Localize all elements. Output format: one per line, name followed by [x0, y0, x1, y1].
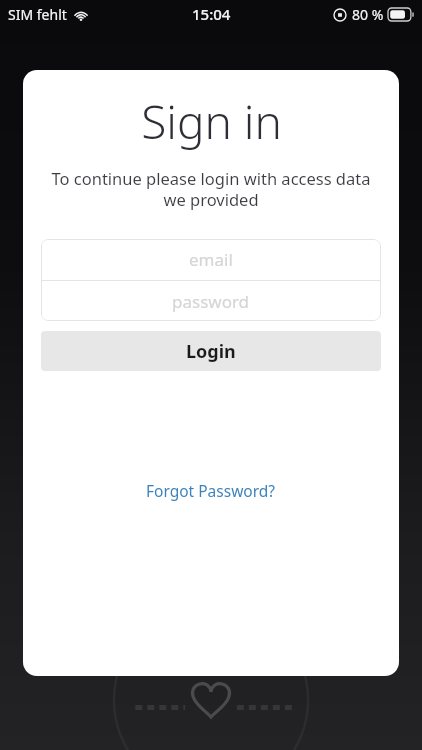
staticText: Forgot Password? [146, 480, 276, 501]
staticText: email [189, 248, 233, 271]
button[interactable]: email [41, 239, 381, 280]
staticText: password [172, 290, 250, 313]
staticText: 15:04 [192, 4, 231, 24]
button[interactable]: Forgot Password? [136, 475, 286, 506]
staticText: 80 % [352, 5, 384, 24]
staticText: Sign in [141, 90, 282, 153]
button[interactable]: Login [41, 331, 381, 371]
staticText: To continue please login with access dat… [33, 167, 389, 211]
staticText: Login [186, 339, 236, 364]
staticText: SIM fehlt [8, 5, 67, 24]
button[interactable]: password [41, 281, 381, 321]
